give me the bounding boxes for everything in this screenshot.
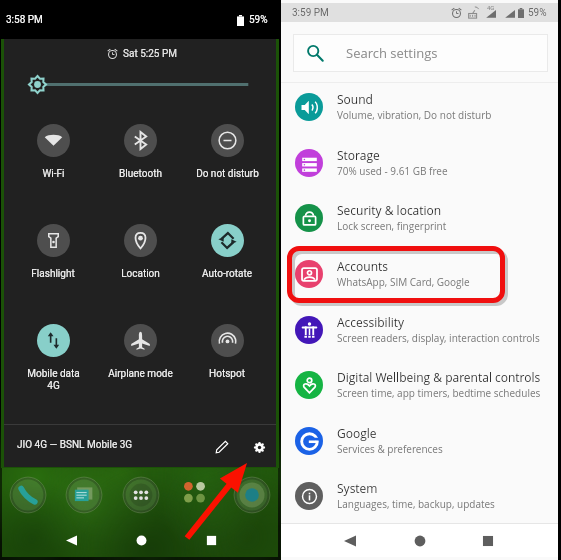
button[interactable]: App 1 [9,476,47,514]
staticText: WhatsApp, SIM Card, Google [337,275,470,289]
button[interactable]: App 2 [65,476,103,514]
staticText: Google [337,425,377,441]
button[interactable]: Search settings [293,34,548,72]
button[interactable]: Recents [472,524,504,557]
staticText: Mobile data [27,368,80,380]
staticText: Screen readers, display, interaction con… [337,331,540,345]
staticText: Location [121,268,160,280]
button[interactable]: Security & location [281,190,558,245]
button[interactable]: Location [97,224,183,294]
staticText: Security & location [337,202,442,218]
staticText: Do not disturb [196,168,259,180]
staticText: Hotspot [209,368,245,380]
staticText: Flashlight [31,268,75,280]
staticText: Sat 5:25 PM [123,48,177,60]
button[interactable]: Wi-Fi [10,124,96,194]
staticText: Languages, time, backup, updates [337,497,495,511]
button[interactable]: Mobile data [10,324,96,394]
button[interactable]: Sound [281,79,558,134]
button[interactable]: Hotspot [184,324,270,394]
button[interactable]: Back [334,524,366,557]
staticText: Screen time, app timers, bedtime schedul… [337,386,541,400]
button[interactable]: Do not disturb [184,124,270,194]
staticText: 4G [487,4,495,11]
button[interactable]: Recents [196,529,226,551]
button[interactable]: Home [126,529,156,551]
staticText: 59% [249,14,268,26]
button[interactable]: Edit [206,431,238,463]
staticText: Storage [337,147,380,163]
staticText: Digital Wellbeing & parental controls [337,369,541,385]
button[interactable]: Back [56,529,86,551]
staticText: Services & preferences [337,442,443,456]
button[interactable]: Google [281,413,558,468]
button[interactable]: Digital Wellbeing & parental controls [281,357,558,412]
button[interactable]: Airplane mode [97,324,183,394]
staticText: 59% [528,7,547,19]
staticText: Sound [337,91,373,107]
staticText: Wi-Fi [42,168,65,180]
staticText: 70% used - 9.61 GB free [337,164,448,178]
button[interactable]: Settings [243,431,275,463]
button[interactable]: App 5 [233,476,271,514]
staticText: 3:59 PM [292,7,329,19]
button[interactable]: Accounts [281,246,558,301]
staticText: Volume, vibration, Do not disturb [337,108,492,122]
button[interactable]: App 3 [122,476,160,514]
staticText: Lock screen, fingerprint [337,219,447,233]
staticText: Auto-rotate [202,268,252,280]
staticText: System [337,480,378,496]
button[interactable]: Accessibility [281,302,558,357]
button[interactable]: App 4 [177,476,215,514]
button[interactable]: Bluetooth [97,124,183,194]
staticText: 4G [47,380,60,392]
staticText: Accounts [337,258,388,274]
button[interactable]: Auto-rotate [184,224,270,294]
staticText: Search settings [346,44,438,62]
staticText: Bluetooth [119,168,162,180]
staticText: 3:58 PM [6,14,43,26]
staticText: JIO 4G — BSNL Mobile 3G [17,439,133,451]
button[interactable]: System [281,468,558,523]
button[interactable]: Storage [281,135,558,190]
staticText: Accessibility [337,314,404,330]
button[interactable]: Flashlight [10,224,96,294]
button[interactable]: Home [404,524,436,557]
staticText: Airplane mode [108,368,173,380]
